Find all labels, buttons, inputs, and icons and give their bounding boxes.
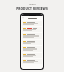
staticText: PRODUCT REVIEWS	[16, 7, 48, 11]
button[interactable]	[22, 46, 42, 52]
button[interactable]	[22, 40, 42, 45]
button[interactable]	[22, 53, 42, 58]
staticText: IDEAS	[29, 3, 36, 6]
button[interactable]	[22, 59, 42, 64]
button[interactable]: IDEAS	[0, 3, 64, 6]
button[interactable]	[22, 33, 42, 39]
button[interactable]: Back	[22, 17, 24, 19]
button[interactable]	[22, 27, 42, 32]
button[interactable]: PRODUCT REVIEWS	[0, 7, 64, 11]
button[interactable]: Back	[21, 16, 43, 20]
button[interactable]	[22, 21, 42, 26]
